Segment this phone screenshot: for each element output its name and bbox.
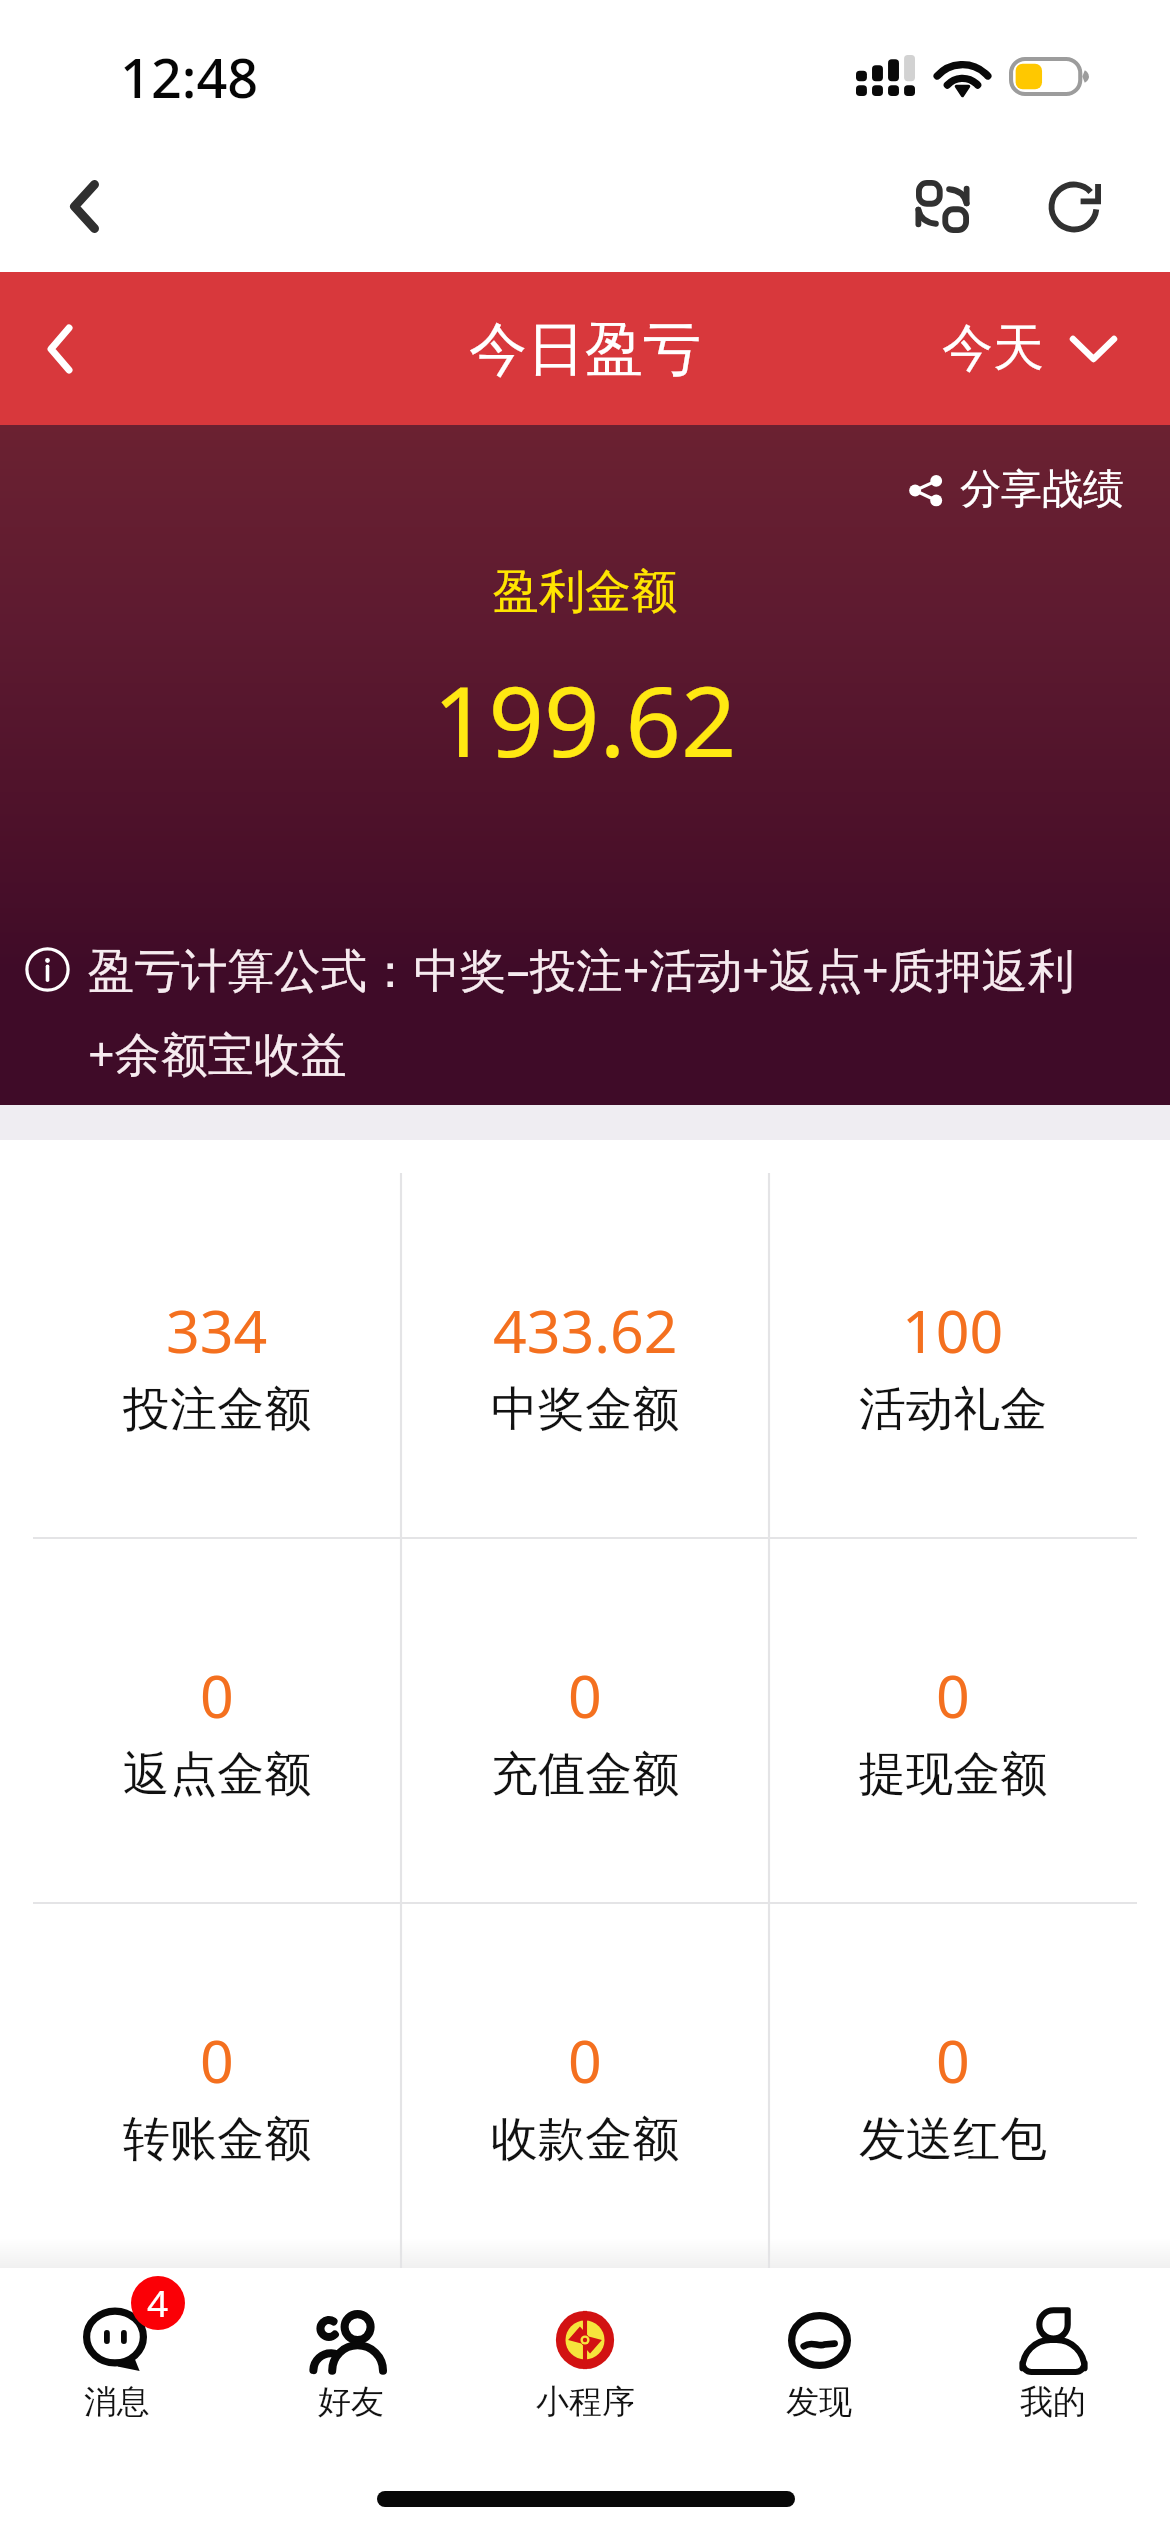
staticText: 今日盈亏 [469, 313, 701, 386]
staticText: 中奖金额 [491, 1380, 679, 1439]
button[interactable]: 好友 [234, 2268, 468, 2438]
button[interactable]: Back [10, 299, 110, 399]
button[interactable]: 发现 [702, 2268, 936, 2438]
staticText: 投注金额 [123, 1380, 311, 1439]
staticText: 小程序 [536, 2381, 635, 2423]
button[interactable]: 334 [33, 1173, 401, 1538]
staticText: 好友 [318, 2381, 384, 2423]
button[interactable]: 小程序 [468, 2268, 702, 2438]
staticText: 0 [200, 2020, 234, 2100]
staticText: 0 [936, 2020, 970, 2100]
staticText: 199.62 [433, 653, 737, 785]
button[interactable]: Scan mini program [887, 166, 997, 246]
staticText: 我的 [1020, 2381, 1086, 2423]
button[interactable]: Back [24, 161, 144, 251]
button[interactable]: 100 [769, 1173, 1137, 1538]
button[interactable]: 433.62 [401, 1173, 769, 1538]
staticText: 转账金额 [123, 2110, 311, 2169]
staticText: 发现 [786, 2381, 852, 2423]
staticText: 0 [568, 1655, 602, 1735]
button[interactable]: 0 [33, 1538, 401, 1903]
staticText: 收款金额 [491, 2110, 679, 2169]
staticText: 活动礼金 [859, 1380, 1047, 1439]
button[interactable]: 0 [769, 1538, 1137, 1903]
staticText: 返点金额 [123, 1745, 311, 1804]
staticText: 盈亏计算公式：中奖–投注+活动+返点+质押返利 +余额宝收益 [88, 937, 1075, 1084]
button[interactable]: 今天 [928, 299, 1133, 399]
staticText: 今天 [942, 316, 1044, 380]
staticText: 0 [568, 2020, 602, 2100]
staticText: 消息 [84, 2381, 150, 2423]
button[interactable]: 0 [769, 1903, 1137, 2268]
staticText: 433.62 [493, 1290, 678, 1370]
button[interactable]: 0 [401, 1903, 769, 2268]
staticText: 分享战绩 [960, 464, 1124, 516]
button[interactable]: 分享战绩 [893, 455, 1133, 525]
button[interactable]: 我的 [936, 2268, 1170, 2438]
staticText: 提现金额 [859, 1745, 1047, 1804]
button[interactable]: Refresh [1020, 167, 1130, 245]
staticText: 100 [902, 1290, 1004, 1370]
staticText: 0 [936, 1655, 970, 1735]
staticText: 盈利金额 [493, 563, 677, 621]
staticText: 12:48 [120, 40, 259, 114]
staticText: 充值金额 [491, 1745, 679, 1804]
staticText: 0 [200, 1655, 234, 1735]
staticText: 发送红包 [859, 2110, 1047, 2169]
button[interactable]: 0 [33, 1903, 401, 2268]
staticText: 4 [147, 2277, 169, 2327]
button[interactable]: 0 [401, 1538, 769, 1903]
staticText: 334 [166, 1290, 268, 1370]
button[interactable]: 4 [0, 2268, 234, 2438]
